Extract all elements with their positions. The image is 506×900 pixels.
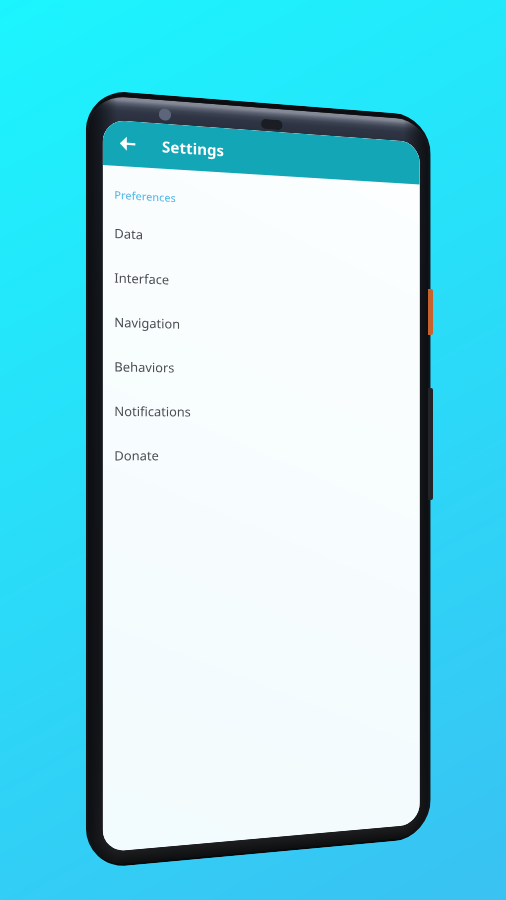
button[interactable]: Data: [103, 211, 420, 269]
button[interactable]: Back: [112, 127, 143, 160]
staticText: Behaviors: [114, 358, 175, 377]
staticText: Donate: [114, 447, 159, 465]
staticText: Notifications: [114, 402, 191, 421]
staticText: Preferences: [114, 187, 176, 205]
button[interactable]: Interface: [103, 255, 420, 310]
staticText: Navigation: [114, 314, 180, 333]
button[interactable]: Notifications: [103, 389, 420, 434]
button[interactable]: Behaviors: [103, 344, 420, 393]
button[interactable]: Navigation: [103, 300, 420, 351]
button[interactable]: Donate: [103, 433, 420, 478]
staticText: Data: [114, 225, 143, 243]
staticText: Interface: [114, 269, 170, 289]
staticText: Settings: [162, 136, 224, 160]
